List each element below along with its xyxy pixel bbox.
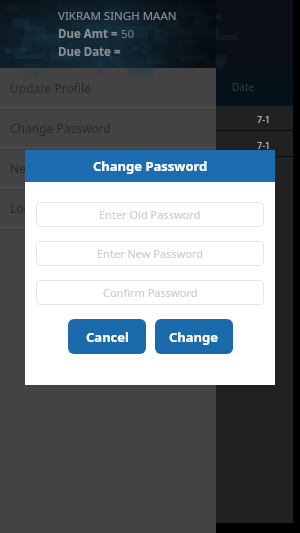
button[interactable]: Change [155, 319, 233, 354]
button[interactable]: Update Profile [0, 68, 216, 108]
button[interactable]: Logout [0, 188, 216, 228]
staticText: Due Amt = [58, 26, 118, 42]
button[interactable]: Cancel [68, 319, 146, 354]
button[interactable]: Enter Old Password [36, 202, 264, 227]
staticText: VIKRAM SINGH MAAN [58, 8, 177, 24]
staticText: Due Date = [58, 44, 121, 60]
staticText: Cancel [86, 328, 129, 346]
staticText: Enter New Password [97, 246, 204, 261]
staticText: Date [232, 80, 255, 94]
staticText: 7-1 [257, 113, 271, 125]
staticText: Update Profile [10, 80, 91, 96]
staticText: New Password [10, 160, 93, 176]
staticText: Enter Old Password [99, 207, 201, 222]
button[interactable]: Enter New Password [36, 241, 264, 266]
staticText: Confirm Password [103, 285, 198, 300]
staticText: 50 [118, 26, 135, 42]
button[interactable]: Confirm Password [36, 280, 264, 305]
button[interactable]: Change Password [0, 108, 216, 148]
button[interactable]: New Password [0, 148, 216, 188]
staticText: Change Password [93, 157, 208, 175]
staticText: 7-1 [257, 139, 271, 151]
staticText: Change Password [10, 120, 111, 136]
staticText: Change [169, 328, 219, 346]
staticText: Logout [10, 200, 50, 216]
